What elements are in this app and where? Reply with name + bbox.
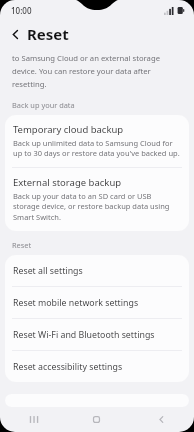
staticText: 10:00	[11, 5, 32, 16]
staticText: Back up your data	[12, 100, 75, 110]
staticText: Temporary cloud backup	[13, 123, 124, 136]
button[interactable]: Reset Wi-Fi and Bluetooth settings	[5, 319, 189, 350]
button[interactable]: Back	[129, 407, 194, 432]
staticText: Reset	[27, 24, 69, 44]
staticText: Reset Wi-Fi and Bluetooth settings	[13, 329, 155, 341]
button[interactable]: Recent apps	[0, 407, 64, 432]
button[interactable]: Temporary cloud backup	[5, 115, 189, 167]
staticText: Reset mobile network settings	[13, 297, 139, 309]
staticText: to Samsung Cloud or an external storage …	[12, 53, 182, 89]
button[interactable]: Reset all settings	[5, 255, 189, 286]
staticText: External storage backup	[13, 176, 122, 189]
button[interactable]: External storage backup	[5, 168, 189, 231]
staticText: Back up your data to an SD card or USB s…	[13, 191, 180, 223]
button[interactable]: Back	[5, 24, 25, 44]
button[interactable]: Home	[64, 407, 129, 432]
staticText: Reset	[12, 240, 32, 250]
button[interactable]: Reset mobile network settings	[5, 287, 189, 318]
staticText: Reset all settings	[13, 265, 83, 277]
staticText: Back up unlimited data to Samsung Cloud …	[13, 138, 180, 159]
button[interactable]: Reset accessibility settings	[5, 351, 189, 382]
staticText: Reset accessibility settings	[13, 361, 123, 373]
